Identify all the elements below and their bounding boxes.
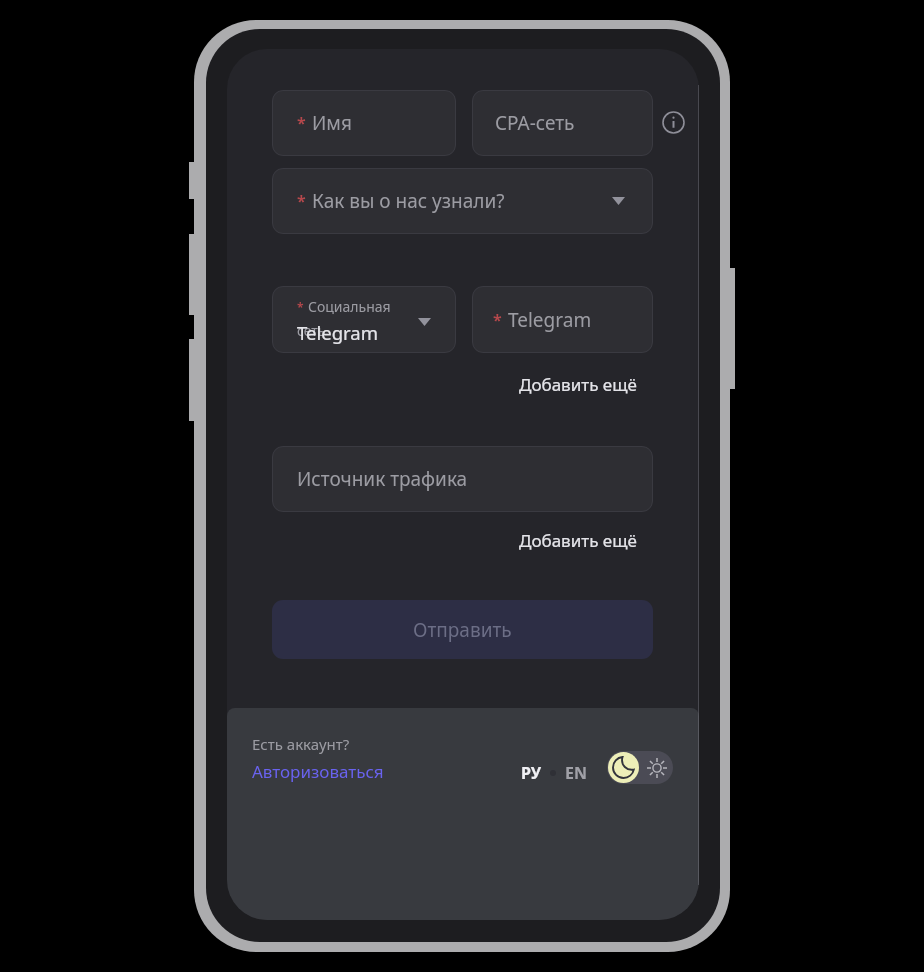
button[interactable]: Добавить ещё (513, 525, 643, 556)
staticText: EN (565, 762, 587, 784)
button[interactable]: Информация (662, 111, 685, 134)
staticText: Добавить ещё (519, 373, 637, 396)
button[interactable]: EN (561, 758, 591, 788)
staticText: Имя (312, 110, 352, 136)
staticText: CPA-сеть (495, 110, 575, 136)
button[interactable]: * (272, 168, 653, 234)
staticText: * (297, 190, 306, 212)
button[interactable]: Источник трафика (272, 446, 653, 512)
button[interactable]: Авторизоваться (252, 760, 384, 783)
staticText: * (493, 309, 502, 331)
staticText: Telegram (508, 307, 592, 333)
button[interactable]: Добавить ещё (513, 369, 643, 400)
staticText: Отправить (413, 617, 512, 643)
staticText: РУ (521, 762, 541, 784)
staticText: Источник трафика (297, 466, 468, 492)
button[interactable]: * (472, 286, 653, 353)
button[interactable]: CPA-сеть (472, 90, 653, 156)
button[interactable]: * (272, 286, 456, 353)
staticText: Авторизоваться (252, 760, 384, 783)
staticText: * (297, 112, 306, 134)
staticText: Добавить ещё (519, 529, 637, 552)
staticText: Telegram (297, 320, 378, 345)
staticText: сеть (297, 321, 326, 340)
staticText: Есть аккаунт? (252, 734, 350, 754)
button[interactable]: * (272, 90, 456, 156)
button[interactable]: РУ (517, 758, 545, 788)
staticText: Как вы о нас узнали? (312, 188, 505, 214)
button[interactable]: Переключить тему (607, 751, 673, 784)
button[interactable]: Отправить (272, 600, 653, 659)
staticText: Социальная (308, 297, 391, 316)
staticText: * (297, 299, 304, 315)
